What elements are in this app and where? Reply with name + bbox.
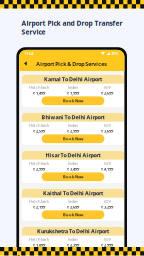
button[interactable]: Book Now bbox=[42, 248, 104, 256]
staticText: Airport Pick and Drop Transfer Service bbox=[21, 19, 122, 36]
staticText: ₹ 1,999 bbox=[67, 90, 79, 96]
staticText: ₹ 2,399 bbox=[67, 242, 79, 248]
button[interactable]: Book Now bbox=[42, 134, 104, 143]
staticText: Karnal To Delhi Airport bbox=[44, 76, 102, 83]
staticText: Book Now bbox=[63, 98, 83, 103]
staticText: ₹ 2,199 bbox=[33, 204, 45, 210]
staticText: ₹ 3,299 bbox=[101, 204, 113, 210]
staticText: ₹ 3,699 bbox=[101, 128, 113, 134]
staticText: Hisar To Delhi Airport bbox=[45, 152, 100, 159]
staticText: ₹ 1,499 bbox=[33, 90, 45, 96]
staticText: ₹ 2,999 bbox=[33, 166, 45, 172]
button[interactable]: Kurukshetra To Delhi Airport bbox=[22, 227, 124, 256]
staticText: 11:04 bbox=[24, 51, 33, 56]
staticText: Sedan bbox=[67, 84, 78, 90]
staticText: ₹ 1,899 bbox=[33, 242, 45, 248]
staticText: SUV bbox=[103, 160, 110, 166]
button[interactable]: Book Now bbox=[42, 172, 104, 181]
staticText: Hatchback bbox=[29, 236, 49, 242]
button[interactable]: Book Now bbox=[42, 96, 104, 105]
staticText: SUV bbox=[103, 122, 110, 128]
staticText: ₹ 2,699 bbox=[67, 204, 79, 210]
staticText: ₹ 2,999 bbox=[101, 242, 113, 248]
staticText: Hatchback bbox=[29, 84, 49, 90]
staticText: Hatchback bbox=[29, 160, 49, 166]
staticText: ₹ 2,599 bbox=[33, 128, 45, 134]
button[interactable]: Bhiwani To Delhi Airport bbox=[22, 113, 124, 145]
staticText: Kurukshetra To Delhi Airport bbox=[37, 228, 109, 235]
staticText: Hatchback bbox=[29, 122, 49, 128]
button[interactable]: Back bbox=[22, 59, 30, 67]
staticText: ₹ 2,699 bbox=[101, 90, 113, 96]
staticText: Sedan bbox=[67, 122, 78, 128]
staticText: SUV bbox=[103, 236, 110, 242]
button[interactable]: Book Now bbox=[42, 210, 104, 219]
staticText: SUV bbox=[103, 198, 110, 204]
button[interactable]: Kaithal To Delhi Airport bbox=[22, 189, 124, 221]
staticText: Sedan bbox=[67, 160, 78, 166]
staticText: Book Now bbox=[63, 250, 83, 255]
staticText: Kaithal To Delhi Airport bbox=[43, 190, 103, 197]
staticText: SUV bbox=[103, 84, 110, 90]
staticText: Bhiwani To Delhi Airport bbox=[41, 114, 104, 121]
staticText: Hatchback bbox=[29, 198, 49, 204]
staticText: Airport Pick & Drop Services bbox=[36, 60, 107, 68]
staticText: 49% bbox=[111, 51, 119, 56]
staticText: ₹ 2,999 bbox=[67, 128, 79, 134]
button[interactable]: Karnal To Delhi Airport bbox=[22, 75, 124, 107]
staticText: Sedan bbox=[67, 236, 78, 242]
staticText: Book Now bbox=[63, 136, 83, 141]
staticText: ₹ 4,199 bbox=[101, 166, 113, 172]
staticText: Book Now bbox=[63, 174, 83, 179]
staticText: Sedan bbox=[67, 198, 78, 204]
button[interactable]: Hisar To Delhi Airport bbox=[22, 151, 124, 183]
staticText: Book Now bbox=[63, 212, 83, 217]
staticText: ₹ 3,499 bbox=[67, 166, 79, 172]
